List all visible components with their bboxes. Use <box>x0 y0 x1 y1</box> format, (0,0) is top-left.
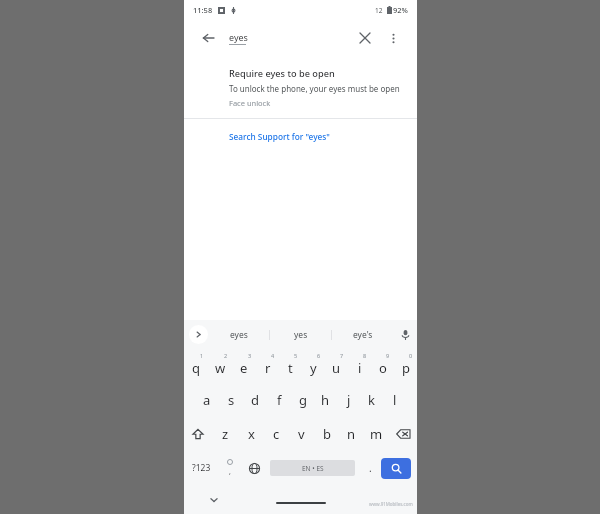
button[interactable]: m <box>364 417 389 451</box>
staticText: w <box>215 359 226 377</box>
staticText: www.91Mobiles.com <box>369 501 413 507</box>
staticText: 8 <box>363 352 367 359</box>
button[interactable]: t <box>279 349 302 383</box>
staticText: u <box>332 359 341 377</box>
button[interactable]: Expand suggestions <box>189 325 208 344</box>
staticText: ?123 <box>192 462 211 474</box>
button[interactable]: f <box>267 383 291 417</box>
button[interactable]: g <box>291 383 314 417</box>
button[interactable]: w <box>208 349 232 383</box>
staticText: 1 <box>200 352 204 359</box>
button[interactable]: p <box>394 349 417 383</box>
button[interactable]: j <box>337 383 360 417</box>
staticText: 12 <box>375 6 383 15</box>
button[interactable]: EN • ES <box>270 460 355 476</box>
staticText: x <box>248 425 255 443</box>
staticText: h <box>321 391 330 409</box>
staticText: y <box>310 359 317 377</box>
button[interactable]: z <box>212 417 238 451</box>
button[interactable]: Shift <box>184 417 212 451</box>
button[interactable]: o <box>371 349 394 383</box>
staticText: To unlock the phone, your eyes must be o… <box>229 83 400 94</box>
staticText: , <box>229 467 231 477</box>
button[interactable]: s <box>219 383 243 417</box>
staticText: 6 <box>317 352 321 359</box>
staticText: n <box>347 425 356 443</box>
staticText: d <box>251 391 259 409</box>
button[interactable]: d <box>243 383 267 417</box>
button[interactable]: i <box>348 349 371 383</box>
staticText: i <box>358 359 362 377</box>
staticText: v <box>298 425 305 443</box>
staticText: 92% <box>393 5 408 15</box>
button[interactable]: Voice input <box>393 320 417 349</box>
button[interactable]: a <box>195 383 219 417</box>
staticText: Search Support for "eyes" <box>229 131 330 142</box>
button[interactable]: Change language <box>242 451 266 485</box>
button[interactable]: v <box>289 417 314 451</box>
staticText: 9 <box>386 352 390 359</box>
staticText: k <box>368 391 375 409</box>
button[interactable]: yes <box>270 320 331 349</box>
staticText: o <box>379 359 387 377</box>
staticText: yes <box>294 329 308 341</box>
staticText: g <box>299 391 307 409</box>
staticText: f <box>277 391 282 409</box>
staticText: 7 <box>340 352 344 359</box>
button[interactable]: q <box>184 349 208 383</box>
staticText: eye's <box>353 329 373 341</box>
staticText: l <box>393 391 397 409</box>
staticText: Require eyes to be open <box>229 67 335 80</box>
button[interactable]: c <box>264 417 289 451</box>
staticText: z <box>222 425 229 443</box>
button[interactable]: y <box>302 349 325 383</box>
button[interactable]: Hide keyboard <box>204 490 224 510</box>
staticText: EN • ES <box>302 464 324 473</box>
button[interactable]: x <box>238 417 264 451</box>
staticText: 4 <box>271 352 275 359</box>
button[interactable]: l <box>383 383 406 417</box>
button[interactable]: . <box>359 451 381 485</box>
staticText: r <box>265 359 271 377</box>
button[interactable]: e <box>232 349 256 383</box>
staticText: Face unlock <box>229 98 271 108</box>
button[interactable]: Backspace <box>389 417 417 451</box>
staticText: e <box>240 359 248 377</box>
button[interactable]: eyes <box>208 320 269 349</box>
button[interactable]: ?123 <box>184 451 218 485</box>
button[interactable]: n <box>339 417 364 451</box>
staticText: 5 <box>294 352 298 359</box>
button[interactable]: Search <box>381 458 411 479</box>
staticText: t <box>288 359 293 377</box>
button[interactable]: u <box>325 349 348 383</box>
staticText: a <box>203 391 211 409</box>
staticText: c <box>273 425 280 443</box>
staticText: j <box>347 391 351 409</box>
staticText: s <box>228 391 235 409</box>
button[interactable]: b <box>314 417 339 451</box>
staticText: m <box>370 425 383 443</box>
button[interactable]: Emoji <box>218 451 242 485</box>
staticText: p <box>402 359 410 377</box>
button[interactable]: Search Support for "eyes" <box>184 119 417 154</box>
staticText: eyes <box>229 31 248 43</box>
staticText: 2 <box>224 352 228 359</box>
button[interactable]: Back <box>197 27 219 49</box>
staticText: q <box>192 359 200 377</box>
button[interactable]: eye's <box>332 320 393 349</box>
staticText: 0 <box>409 352 413 359</box>
staticText: . <box>369 461 372 475</box>
button[interactable]: r <box>256 349 279 383</box>
button[interactable]: Clear <box>354 27 376 49</box>
staticText: 3 <box>248 352 252 359</box>
staticText: eyes <box>230 329 248 341</box>
button[interactable]: h <box>314 383 337 417</box>
button[interactable]: More options <box>382 27 404 49</box>
staticText: 11:58 <box>193 5 213 15</box>
staticText: b <box>323 425 331 443</box>
button[interactable]: k <box>360 383 383 417</box>
button[interactable]: Require eyes to be open <box>184 56 417 118</box>
